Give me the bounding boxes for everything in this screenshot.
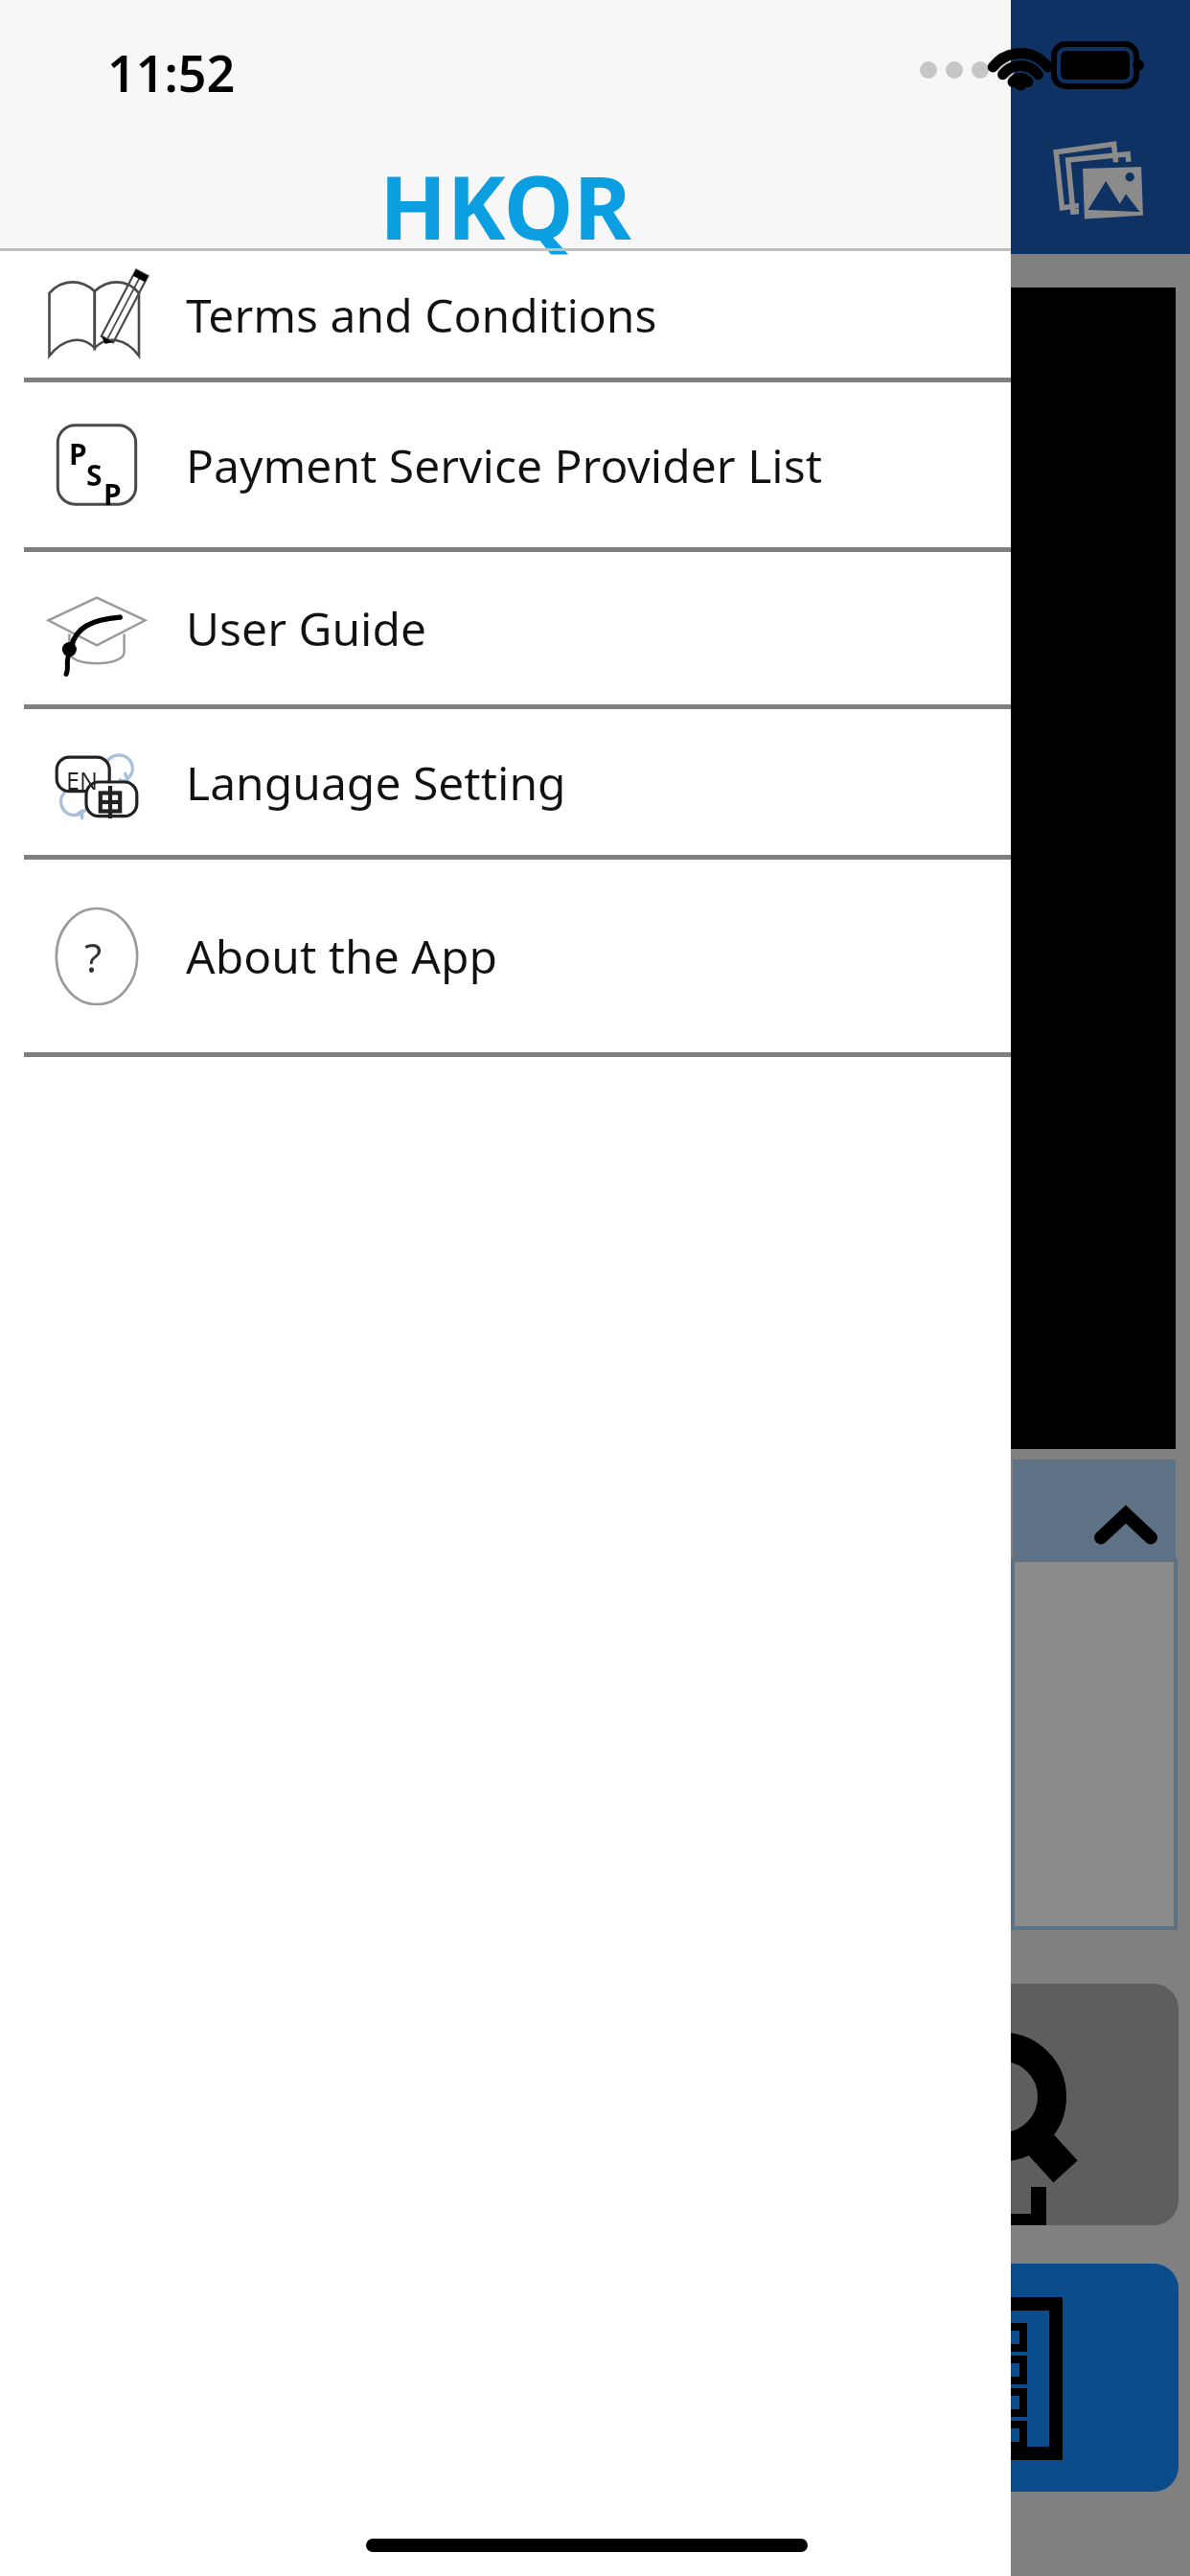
button[interactable] — [1006, 1984, 1179, 2225]
button[interactable] — [1013, 1460, 1176, 1560]
staticText: HKQR — [0, 146, 1011, 265]
button[interactable]: P — [0, 382, 1011, 547]
staticText: ? — [84, 930, 103, 984]
staticText: Terms and Conditions — [186, 284, 657, 346]
staticText: User Guide — [186, 597, 427, 659]
staticText: 11:52 — [107, 38, 236, 106]
staticText: P — [69, 434, 87, 473]
button[interactable] — [1006, 2264, 1179, 2492]
staticText: Payment Service Provider List — [186, 434, 822, 496]
button[interactable]: ? — [0, 860, 1011, 1052]
staticText: About the App — [186, 925, 497, 987]
staticText: Language Setting — [186, 751, 566, 814]
button[interactable]: User Guide — [0, 552, 1011, 704]
button[interactable]: EN — [0, 709, 1011, 855]
staticText: EN — [66, 764, 98, 796]
staticText: P — [103, 474, 122, 514]
button[interactable]: Terms and Conditions — [0, 251, 1011, 378]
button[interactable]: Gallery — [1050, 134, 1150, 234]
staticText: S — [86, 455, 103, 494]
